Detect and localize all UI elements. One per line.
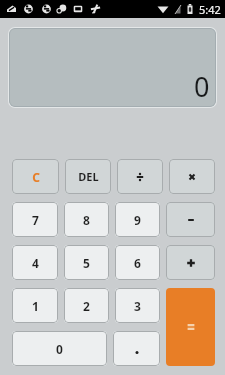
button[interactable]: Multiply [169,159,215,194]
staticText: 0 [56,341,63,357]
staticText: 1 [32,298,39,314]
staticText: 9 [134,212,141,228]
staticText: 5 [83,255,90,271]
button[interactable]: 4 [12,245,58,280]
staticText: 6 [134,255,141,271]
button[interactable]: Add [166,245,215,280]
staticText: 2 [83,298,90,314]
button[interactable]: 7 [12,202,58,237]
staticText: 8 [83,212,90,228]
staticText: C [32,169,40,185]
button[interactable]: Subtract [166,202,215,237]
staticText: 3 [134,298,141,314]
button[interactable]: 9 [115,202,160,237]
staticText: 5:42 [199,2,221,17]
button[interactable]: 3 [115,288,160,323]
button[interactable]: 8 [64,202,109,237]
button[interactable]: 2 [64,288,109,323]
button[interactable]: C [12,159,59,194]
button[interactable]: 1 [12,288,58,323]
button[interactable]: 5 [64,245,109,280]
button[interactable]: Decimal point [113,331,160,366]
button[interactable]: Divide [117,159,163,194]
button[interactable]: Equals [166,288,215,366]
button[interactable]: 0 [12,331,107,366]
staticText: 0 [194,68,210,105]
staticText: DEL [78,169,99,184]
staticText: 4 [32,255,39,271]
button[interactable]: 6 [115,245,160,280]
staticText: 7 [32,212,39,228]
button[interactable]: DEL [65,159,111,194]
